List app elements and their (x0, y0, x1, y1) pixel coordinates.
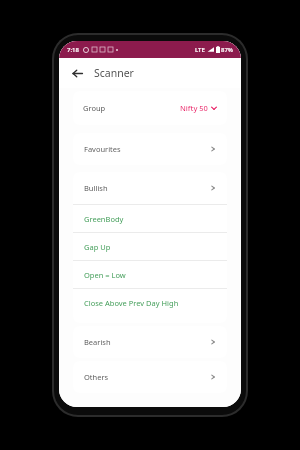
staticText: Close Above Prev Day High (84, 298, 179, 308)
button[interactable]: Gap Up (73, 233, 227, 260)
staticText: Group (83, 103, 106, 113)
button[interactable]: Bearish (73, 326, 227, 358)
button[interactable]: Back (68, 64, 86, 82)
staticText: Favourites (84, 144, 121, 154)
button[interactable]: Others (73, 361, 227, 393)
button[interactable]: Favourites (73, 133, 227, 165)
staticText: Scanner (94, 66, 134, 80)
staticText: Bearish (84, 337, 111, 347)
staticText: 87% (221, 46, 233, 54)
staticText: Gap Up (84, 242, 111, 252)
staticText: Open = Low (84, 270, 126, 280)
staticText: LTE (195, 46, 205, 54)
staticText: Others (84, 372, 109, 382)
staticText: Nifty 50 (180, 103, 208, 113)
button[interactable]: Group (73, 91, 227, 125)
button[interactable]: GreenBody (73, 205, 227, 232)
button[interactable]: Close Above Prev Day High (73, 289, 227, 316)
button[interactable]: Bullish (73, 172, 227, 204)
staticText: 7:18 (67, 46, 79, 54)
staticText: Bullish (84, 183, 108, 193)
button[interactable]: Open = Low (73, 261, 227, 288)
staticText: GreenBody (84, 214, 124, 224)
